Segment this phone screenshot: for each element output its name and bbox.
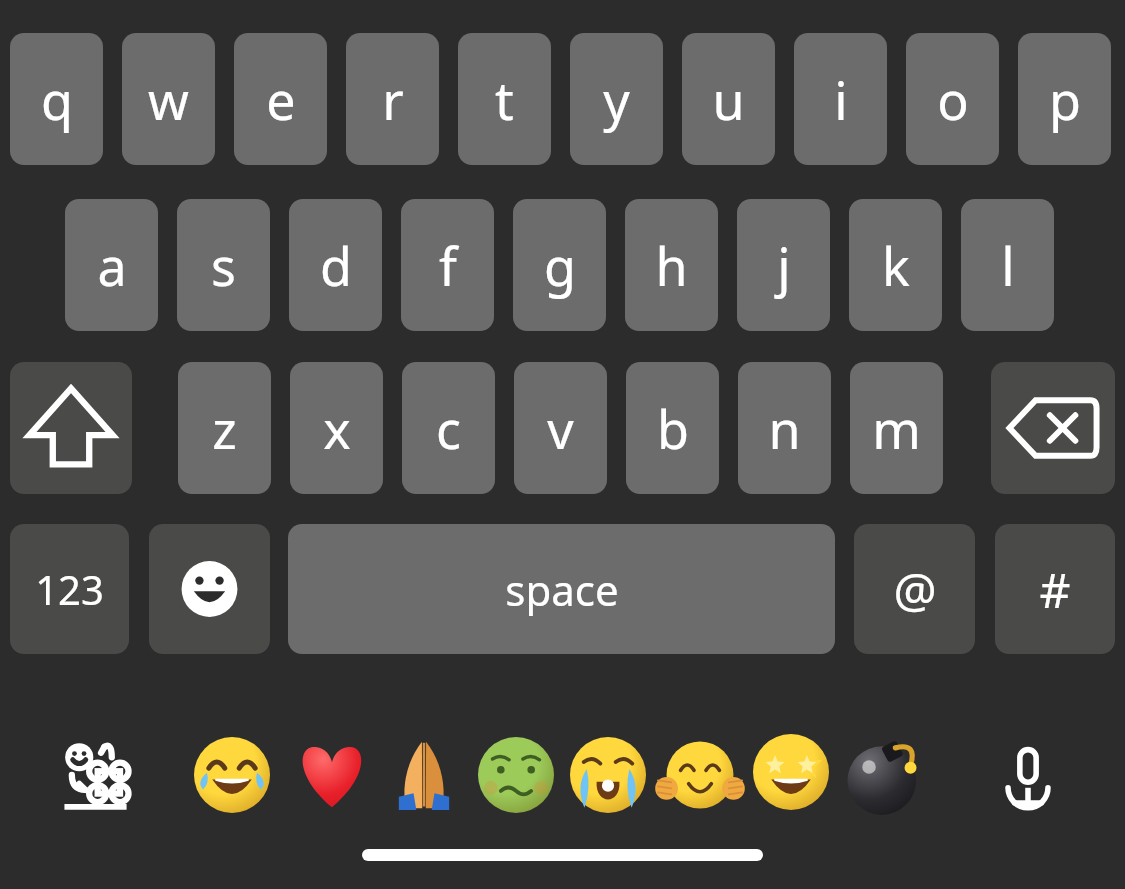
button[interactable]: l	[961, 199, 1054, 331]
staticText: s	[211, 230, 236, 301]
button[interactable]: h	[625, 199, 718, 331]
button[interactable]: Switch keyboard	[60, 738, 134, 812]
staticText: k	[882, 230, 910, 301]
staticText: @	[893, 557, 937, 622]
staticText: space	[505, 561, 619, 618]
button[interactable]: Shift	[10, 362, 132, 494]
button[interactable]: t	[458, 33, 551, 165]
staticText: o	[937, 64, 969, 135]
staticText: t	[495, 64, 514, 135]
button[interactable]: u	[682, 33, 775, 165]
button[interactable]: i	[794, 33, 887, 165]
button[interactable]: Dictation	[993, 738, 1063, 812]
button[interactable]: Star struck	[747, 728, 835, 816]
button[interactable]: 123	[10, 524, 129, 654]
button[interactable]: e	[234, 33, 327, 165]
staticText: u	[712, 64, 745, 135]
staticText: j	[777, 230, 791, 301]
staticText: i	[834, 64, 848, 135]
button[interactable]: x	[290, 362, 383, 494]
button[interactable]: b	[626, 362, 719, 494]
button[interactable]: space	[288, 524, 835, 654]
button[interactable]: n	[738, 362, 831, 494]
button[interactable]: q	[10, 33, 103, 165]
staticText: b	[657, 393, 689, 464]
staticText: g	[544, 230, 576, 301]
staticText: d	[320, 230, 352, 301]
button[interactable]: p	[1018, 33, 1111, 165]
staticText: r	[382, 64, 404, 135]
button[interactable]: y	[570, 33, 663, 165]
button[interactable]: w	[122, 33, 215, 165]
button[interactable]: s	[177, 199, 270, 331]
button[interactable]: c	[402, 362, 495, 494]
button[interactable]: f	[401, 199, 494, 331]
staticText: c	[436, 393, 461, 464]
staticText: a	[97, 230, 127, 301]
staticText: f	[439, 230, 457, 301]
staticText: e	[266, 64, 296, 135]
button[interactable]: Folded hands	[382, 733, 466, 817]
button[interactable]: Red heart	[290, 733, 374, 817]
button[interactable]: z	[178, 362, 271, 494]
button[interactable]: #	[995, 524, 1115, 654]
staticText: n	[768, 393, 801, 464]
button[interactable]: Bomb	[837, 731, 925, 819]
staticText: 123	[35, 562, 104, 616]
staticText: y	[603, 64, 630, 135]
button[interactable]: o	[906, 33, 999, 165]
button[interactable]: Emoji keyboard	[149, 524, 270, 654]
button[interactable]: g	[513, 199, 606, 331]
staticText: x	[323, 393, 351, 464]
button[interactable]: r	[346, 33, 439, 165]
button[interactable]: @	[854, 524, 975, 654]
staticText: m	[872, 393, 921, 464]
staticText: z	[212, 393, 237, 464]
button[interactable]: a	[65, 199, 158, 331]
staticText: w	[148, 64, 189, 135]
staticText: q	[41, 64, 73, 135]
staticText: p	[1049, 64, 1081, 135]
button[interactable]: Backspace	[991, 362, 1115, 494]
button[interactable]: j	[737, 199, 830, 331]
staticText: l	[1001, 230, 1015, 301]
staticText: v	[547, 393, 574, 464]
staticText: h	[655, 230, 688, 301]
button[interactable]: Hugging face	[658, 733, 742, 817]
staticText: #	[1039, 557, 1071, 622]
button[interactable]: v	[514, 362, 607, 494]
button[interactable]: Face with tears of joy	[190, 733, 274, 817]
button[interactable]: Loudly crying face	[566, 733, 650, 817]
button[interactable]: Nauseated face	[474, 733, 558, 817]
button[interactable]: m	[850, 362, 943, 494]
button[interactable]: k	[849, 199, 942, 331]
button[interactable]: d	[289, 199, 382, 331]
